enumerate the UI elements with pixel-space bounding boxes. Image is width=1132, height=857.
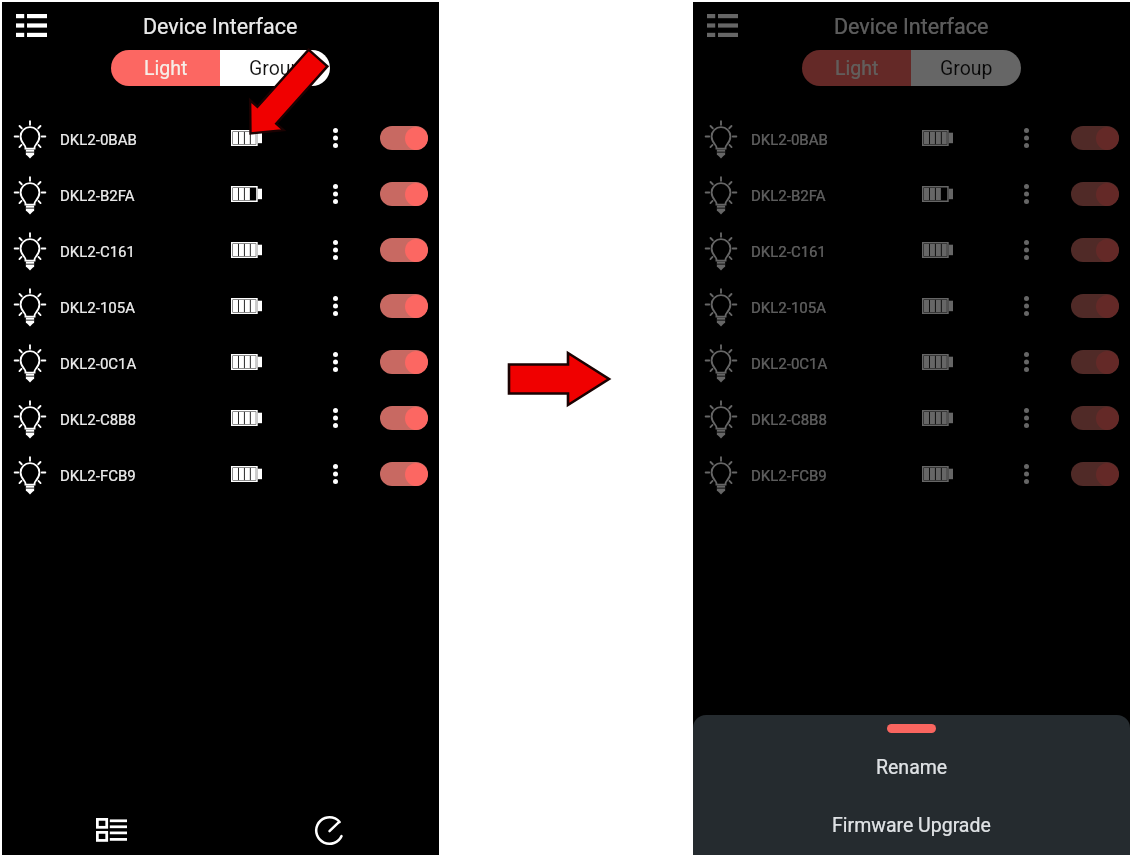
button[interactable]: Light	[802, 50, 911, 86]
button[interactable]: Light	[111, 50, 220, 86]
staticText: DKL2-0BAB	[751, 131, 828, 149]
staticText: Firmware Upgrade	[832, 814, 991, 837]
button[interactable]	[1071, 406, 1119, 430]
button[interactable]: Rename	[693, 745, 1130, 790]
staticText: DKL2-B2FA	[60, 187, 135, 205]
button[interactable]	[1071, 294, 1119, 318]
button[interactable]: DKL2-C161	[2, 221, 439, 277]
button[interactable]: DKL2-B2FA	[2, 165, 439, 221]
button[interactable]: More options	[1008, 344, 1044, 380]
button[interactable]: More options	[317, 400, 353, 436]
button[interactable]: Devices	[2, 805, 220, 855]
button[interactable]: More options	[1008, 232, 1044, 268]
button[interactable]: More options	[317, 120, 353, 156]
button[interactable]: Menu	[702, 5, 743, 46]
staticText: DKL2-0C1A	[751, 355, 828, 373]
staticText: Light	[835, 57, 879, 80]
staticText: Light	[144, 57, 188, 80]
button[interactable]	[1071, 182, 1119, 206]
staticText: DKL2-105A	[60, 299, 135, 317]
button[interactable]	[380, 462, 428, 486]
button[interactable]	[1071, 126, 1119, 150]
button[interactable]: Devices	[693, 805, 911, 855]
button[interactable]: DKL2-0BAB	[693, 109, 1130, 165]
staticText: DKL2-C161	[751, 243, 826, 261]
staticText: DKL2-105A	[751, 299, 826, 317]
button[interactable]: DKL2-0C1A	[2, 333, 439, 389]
staticText: DKL2-B2FA	[751, 187, 826, 205]
button[interactable]: More options	[317, 176, 353, 212]
button[interactable]	[380, 350, 428, 374]
staticText: Rename	[876, 756, 948, 779]
staticText: Group	[249, 57, 302, 80]
staticText: DKL2-C161	[60, 243, 135, 261]
staticText: DKL2-FCB9	[60, 467, 136, 485]
button[interactable]: More options	[1008, 120, 1044, 156]
button[interactable]: DKL2-C8B8	[693, 389, 1130, 445]
button[interactable]: DKL2-FCB9	[2, 445, 439, 501]
button[interactable]: More options	[317, 288, 353, 324]
button[interactable]: More options	[1008, 176, 1044, 212]
button[interactable]: DKL2-FCB9	[693, 445, 1130, 501]
button[interactable]: Menu	[11, 5, 52, 46]
button[interactable]: More options	[317, 232, 353, 268]
button[interactable]: Timer	[220, 805, 439, 855]
button[interactable]: DKL2-0BAB	[2, 109, 439, 165]
button[interactable]: Firmware Upgrade	[693, 803, 1130, 848]
button[interactable]: Timer	[911, 805, 1130, 855]
button[interactable]: DKL2-105A	[2, 277, 439, 333]
staticText: Group	[940, 57, 993, 80]
button[interactable]: More options	[1008, 456, 1044, 492]
staticText: DKL2-0C1A	[60, 355, 137, 373]
button[interactable]	[380, 238, 428, 262]
button[interactable]	[1071, 462, 1119, 486]
button[interactable]: DKL2-0C1A	[693, 333, 1130, 389]
button[interactable]	[1071, 238, 1119, 262]
button[interactable]	[693, 2, 1130, 855]
button[interactable]: More options	[317, 344, 353, 380]
button[interactable]: DKL2-C161	[693, 221, 1130, 277]
button[interactable]: More options	[317, 456, 353, 492]
staticText: DKL2-0BAB	[60, 131, 137, 149]
button[interactable]: More options	[1008, 400, 1044, 436]
staticText: Device Interface	[834, 14, 989, 39]
staticText: DKL2-C8B8	[60, 411, 136, 429]
button[interactable]: More options	[1008, 288, 1044, 324]
staticText: Device Interface	[143, 14, 298, 39]
button[interactable]: Group	[911, 50, 1021, 86]
button[interactable]	[380, 182, 428, 206]
button[interactable]: DKL2-B2FA	[693, 165, 1130, 221]
button[interactable]: DKL2-105A	[693, 277, 1130, 333]
button[interactable]: DKL2-C8B8	[2, 389, 439, 445]
staticText: DKL2-C8B8	[751, 411, 827, 429]
button[interactable]	[1071, 350, 1119, 374]
button[interactable]	[380, 294, 428, 318]
button[interactable]: Group	[220, 50, 330, 86]
button[interactable]	[380, 126, 428, 150]
staticText: DKL2-FCB9	[751, 467, 827, 485]
button[interactable]	[380, 406, 428, 430]
